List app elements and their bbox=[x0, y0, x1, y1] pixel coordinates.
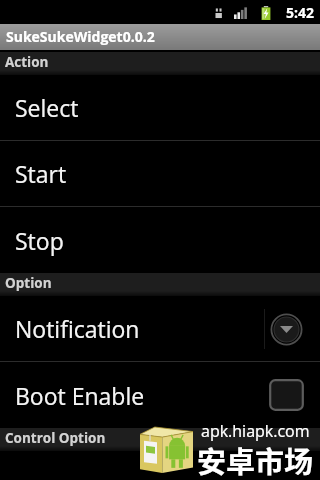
button[interactable]: Notification options bbox=[267, 310, 305, 348]
staticText: Control Option bbox=[5, 429, 106, 447]
staticText: SukeSukeWidget0.0.2 bbox=[6, 27, 155, 46]
button[interactable]: Stop bbox=[0, 207, 320, 273]
staticText: Start bbox=[15, 158, 320, 189]
staticText: Stop bbox=[15, 225, 320, 256]
button[interactable]: Boot Enable checkbox bbox=[267, 376, 305, 414]
button[interactable]: Boot Enable bbox=[0, 362, 320, 428]
staticText: Notification bbox=[15, 313, 252, 344]
staticText: Select bbox=[15, 92, 320, 123]
staticText: 5:42 bbox=[286, 3, 315, 22]
staticText: Boot Enable bbox=[15, 380, 252, 411]
staticText: 安卓市场 bbox=[197, 439, 314, 480]
staticText: apk.hiapk.com bbox=[201, 420, 310, 442]
button[interactable]: Notification bbox=[0, 296, 320, 361]
staticText: Action bbox=[5, 53, 49, 71]
staticText: Option bbox=[5, 274, 52, 292]
button[interactable]: Select bbox=[0, 75, 320, 140]
button[interactable]: Start bbox=[0, 141, 320, 206]
